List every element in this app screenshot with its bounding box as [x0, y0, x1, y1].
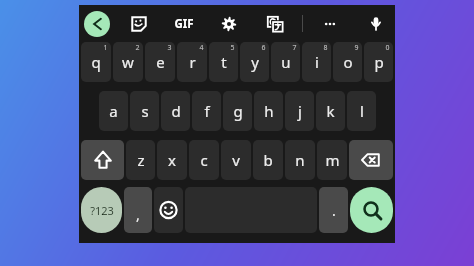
staticText: s	[141, 101, 149, 121]
button[interactable]: d	[161, 91, 190, 131]
staticText: i	[315, 52, 319, 72]
staticText: h	[264, 101, 274, 121]
staticText: x	[168, 150, 176, 170]
staticText: 7	[292, 43, 297, 53]
staticText: 0	[385, 43, 390, 53]
button[interactable]: v	[221, 140, 251, 180]
button[interactable]: p	[364, 42, 393, 82]
staticText: g	[233, 101, 243, 121]
staticText: a	[109, 101, 118, 121]
button[interactable]: Translate	[262, 11, 288, 37]
staticText: .	[332, 201, 336, 220]
button[interactable]: .	[319, 187, 348, 233]
button[interactable]: Back	[84, 11, 110, 37]
staticText: p	[374, 52, 384, 72]
staticText: 6	[261, 43, 266, 53]
button[interactable]: s	[130, 91, 159, 131]
staticText: 2	[135, 43, 140, 53]
staticText: d	[171, 101, 181, 121]
button[interactable]: ,	[124, 187, 152, 233]
staticText: 8	[323, 43, 328, 53]
staticText: e	[156, 52, 165, 72]
button[interactable]: e	[145, 42, 175, 82]
staticText: m	[325, 150, 340, 170]
staticText: t	[221, 52, 227, 72]
staticText: n	[295, 150, 305, 170]
button[interactable]: r	[177, 42, 207, 82]
staticText: w	[122, 52, 134, 72]
staticText: ?123	[90, 203, 114, 218]
staticText: b	[263, 150, 273, 170]
staticText: l	[360, 101, 364, 121]
staticText: ,	[136, 205, 140, 224]
staticText: u	[281, 52, 291, 72]
button[interactable]: b	[253, 140, 283, 180]
staticText: f	[204, 101, 210, 121]
button[interactable]: a	[99, 91, 128, 131]
staticText: y	[251, 52, 259, 72]
button[interactable]: i	[302, 42, 331, 82]
staticText: o	[343, 52, 353, 72]
staticText: 1	[103, 43, 108, 53]
button[interactable]: u	[271, 42, 300, 82]
staticText: 3	[167, 43, 172, 53]
staticText: 4	[199, 43, 204, 53]
button[interactable]: f	[192, 91, 221, 131]
button[interactable]: Settings	[216, 11, 242, 37]
staticText: j	[298, 101, 302, 121]
staticText: r	[189, 52, 196, 72]
button[interactable]: o	[333, 42, 362, 82]
button[interactable]: c	[189, 140, 219, 180]
staticText: c	[200, 150, 208, 170]
button[interactable]: y	[240, 42, 269, 82]
button[interactable]: q	[81, 42, 111, 82]
staticText: 9	[354, 43, 359, 53]
button[interactable]: ?123	[81, 187, 122, 233]
staticText: k	[326, 101, 335, 121]
button[interactable]: t	[209, 42, 238, 82]
button[interactable]: Stickers	[126, 11, 152, 37]
button[interactable]: l	[347, 91, 376, 131]
button[interactable]: x	[157, 140, 187, 180]
staticText: v	[232, 150, 240, 170]
staticText: 5	[230, 43, 235, 53]
button[interactable]: h	[254, 91, 283, 131]
staticText: q	[91, 52, 101, 72]
button[interactable]: n	[285, 140, 315, 180]
staticText: GIF	[174, 16, 194, 32]
staticText: z	[137, 150, 145, 170]
button[interactable]: w	[113, 42, 143, 82]
button[interactable]: g	[223, 91, 252, 131]
button[interactable]: GIF	[169, 9, 199, 39]
button[interactable]: Search	[350, 187, 393, 233]
button[interactable]: More options	[317, 11, 343, 37]
button[interactable]: Voice input	[363, 11, 389, 37]
button[interactable]: Backspace	[349, 140, 393, 180]
button[interactable]: Shift	[81, 140, 124, 180]
button[interactable]: j	[285, 91, 314, 131]
button[interactable]: k	[316, 91, 345, 131]
button[interactable]: m	[317, 140, 347, 180]
button[interactable]: Emoji	[154, 187, 183, 233]
button[interactable]: z	[126, 140, 155, 180]
